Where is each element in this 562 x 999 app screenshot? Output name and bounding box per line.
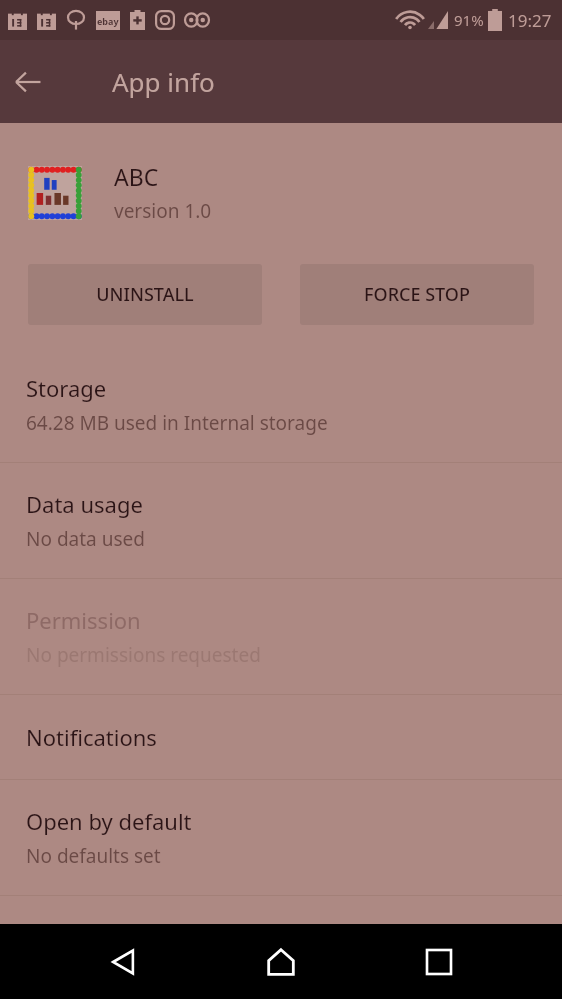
button[interactable]: Recents	[404, 927, 474, 997]
staticText: Notifications	[26, 722, 157, 752]
staticText: Data usage	[26, 489, 143, 519]
staticText: Open by default	[26, 806, 192, 836]
staticText: ABC	[114, 161, 159, 192]
staticText: No data used	[26, 526, 145, 552]
staticText: 19:27	[508, 9, 552, 32]
staticText: ebay	[97, 15, 119, 27]
button[interactable]: Notifications	[0, 695, 562, 779]
staticText: version 1.0	[114, 198, 212, 224]
staticText: App info	[112, 64, 215, 99]
staticText: Storage	[26, 373, 107, 403]
button[interactable]: UNINSTALL	[28, 264, 262, 325]
staticText: 91%	[454, 10, 484, 30]
staticText: UNINSTALL	[96, 282, 194, 307]
staticText: No permissions requested	[26, 642, 261, 668]
button[interactable]: Permission	[0, 579, 562, 694]
staticText: 64.28 MB used in Internal storage	[26, 410, 328, 436]
button[interactable]: FORCE STOP	[300, 264, 534, 325]
button[interactable]: Open by default	[0, 780, 562, 895]
button[interactable]: Storage	[0, 347, 562, 462]
button[interactable]: Back	[88, 927, 158, 997]
staticText: No defaults set	[26, 843, 161, 869]
button[interactable]: Back	[0, 54, 56, 110]
staticText: FORCE STOP	[364, 282, 470, 307]
button[interactable]: Home	[246, 927, 316, 997]
staticText: Permission	[26, 605, 141, 635]
button[interactable]: Data usage	[0, 463, 562, 578]
